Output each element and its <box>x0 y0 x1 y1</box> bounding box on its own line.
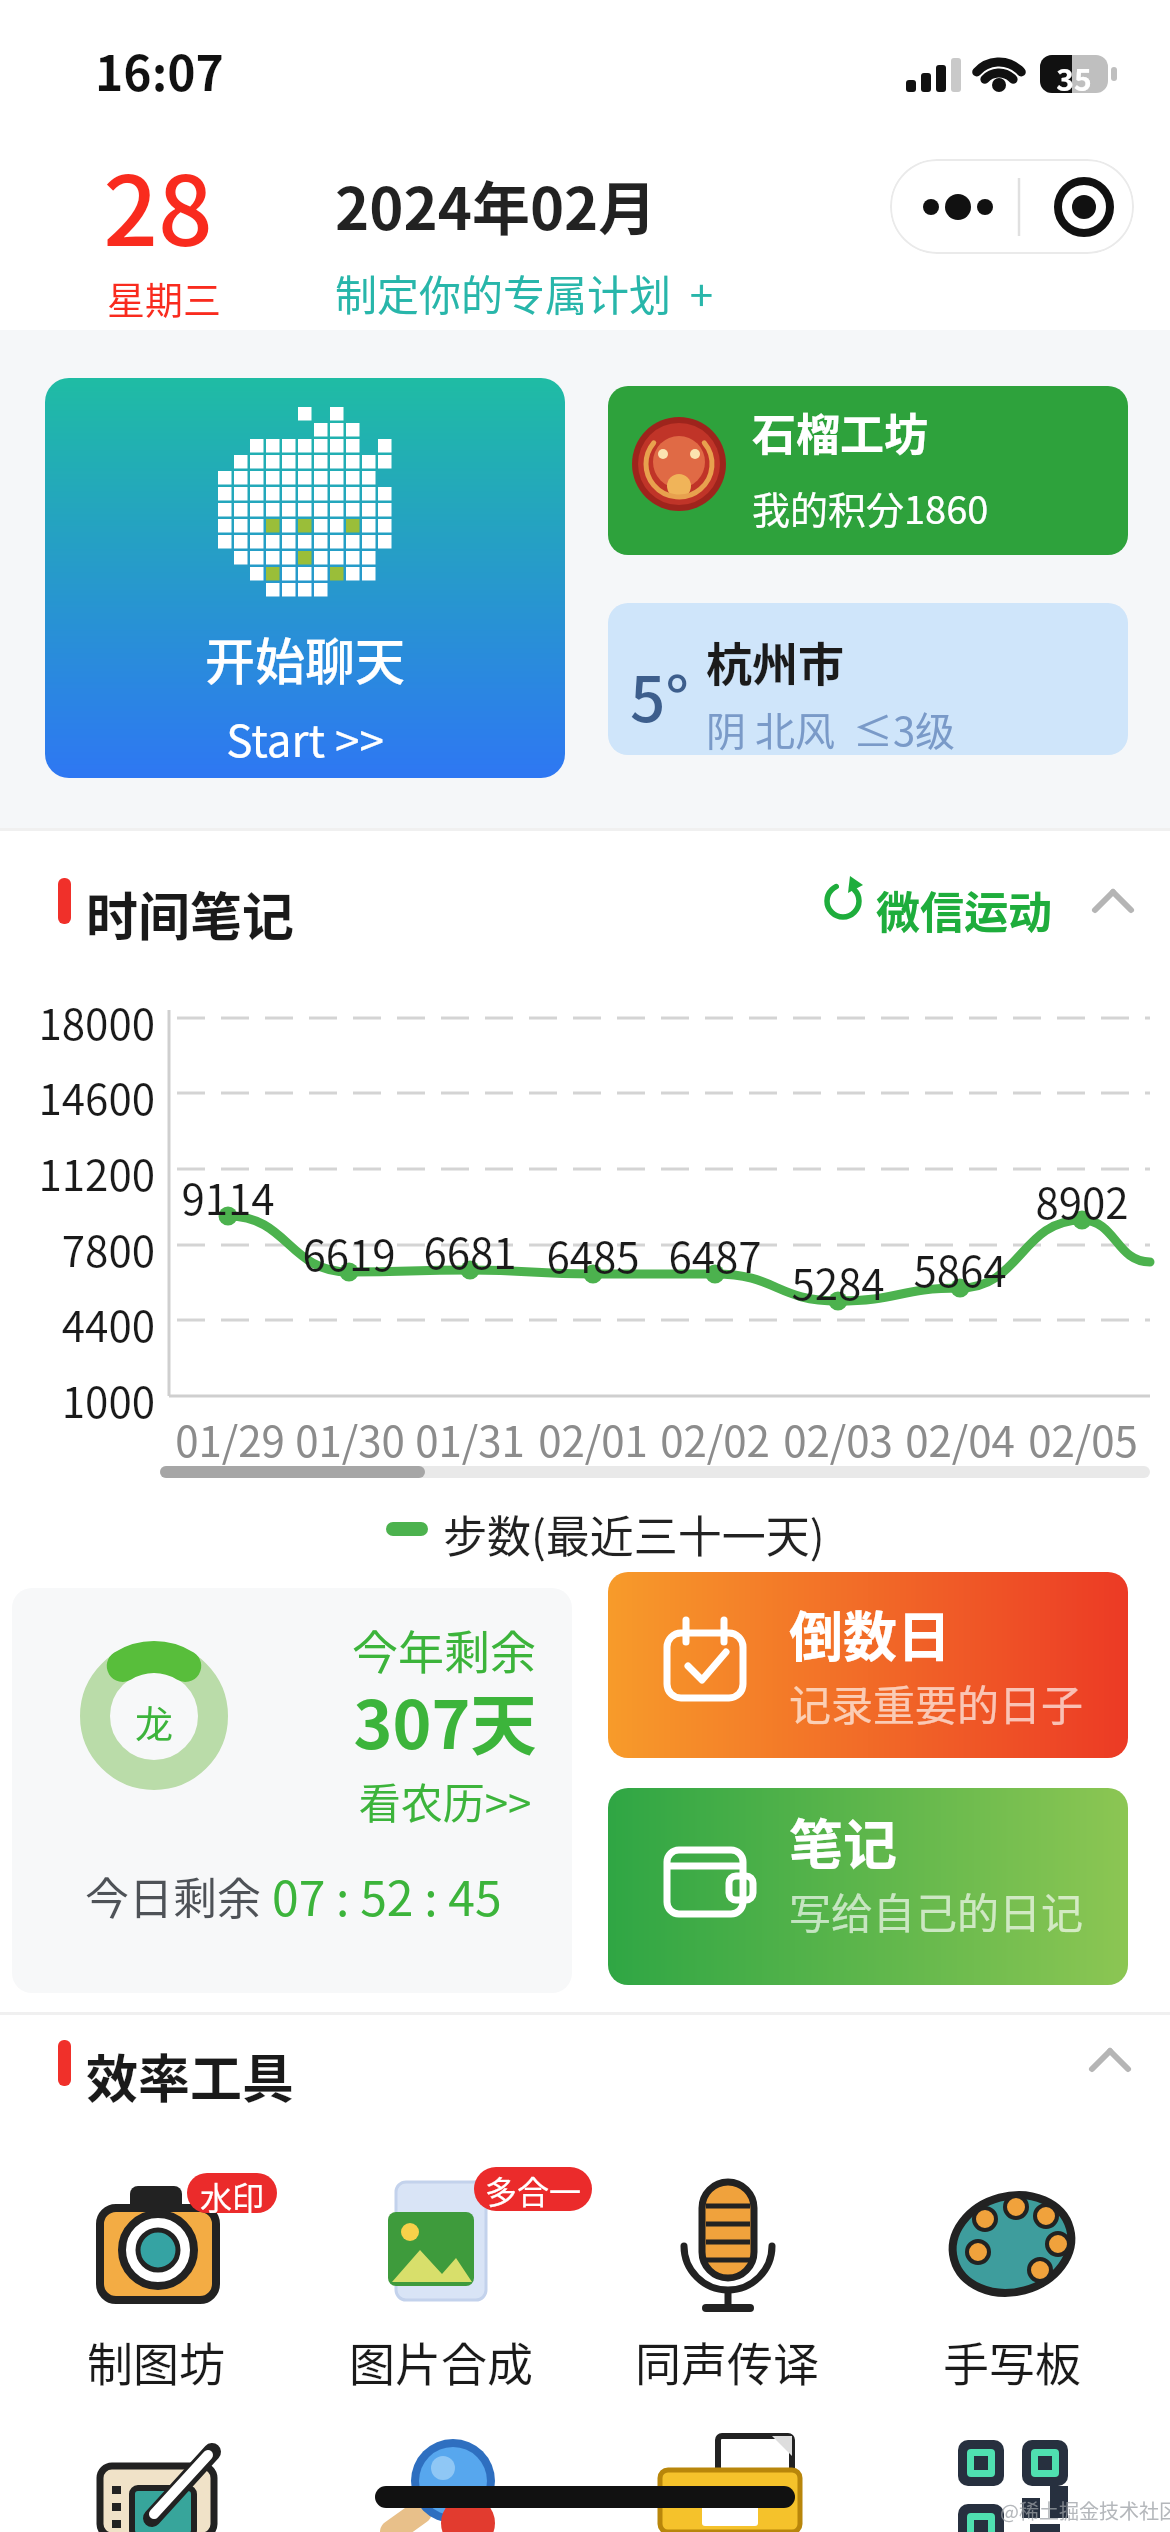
staticText: 18000 <box>5 991 155 1052</box>
staticText: 制定你的专属计划 + <box>335 262 714 323</box>
staticText: 01/30 <box>280 1408 420 1469</box>
staticText: 28 <box>78 135 238 274</box>
staticText: 我的积分1860 <box>752 480 989 535</box>
staticText: 杭州市 <box>706 628 844 695</box>
staticText: 效率工具 <box>86 2038 295 2113</box>
staticText: 1000 <box>5 1369 155 1430</box>
staticText: 星期三 <box>84 270 244 325</box>
staticText: 阴 北风 ≤3级 <box>706 700 956 758</box>
staticText: 01/31 <box>400 1408 540 1469</box>
staticText: 倒数日 <box>789 1594 951 1672</box>
staticText: 02/05 <box>1013 1408 1153 1469</box>
staticText: 02/02 <box>645 1408 785 1469</box>
button[interactable] <box>608 1788 1128 1985</box>
button[interactable] <box>896 2160 1166 2390</box>
staticText: 今日剩余 <box>85 1864 261 1928</box>
staticText: 14600 <box>5 1066 155 1127</box>
button[interactable]: 看农历>> <box>355 1770 535 1831</box>
staticText: 16:07 <box>95 35 224 105</box>
button[interactable] <box>890 159 1134 254</box>
staticText: 5284 <box>768 1251 908 1312</box>
staticText: 6485 <box>523 1224 663 1285</box>
staticText: 手写板 <box>886 2328 1138 2395</box>
staticText: 6487 <box>645 1224 785 1285</box>
staticText: 多合一 <box>485 2167 582 2211</box>
staticText: 看农历>> <box>355 1770 535 1831</box>
staticText: 02/01 <box>523 1408 663 1469</box>
staticText: 步数(最近三十一天) <box>443 1502 825 1566</box>
staticText: 图片合成 <box>315 2328 567 2395</box>
button[interactable] <box>20 2160 290 2390</box>
staticText: 4400 <box>5 1293 155 1354</box>
staticText: 307天 <box>340 1672 550 1768</box>
button[interactable] <box>608 386 1128 555</box>
staticText: 02/03 <box>768 1408 908 1469</box>
staticText: @稀土掘金技术社区 <box>1000 2496 1170 2525</box>
staticText: 2024年02月 <box>335 163 657 247</box>
button[interactable] <box>312 2160 582 2390</box>
staticText: Start >> <box>45 706 565 770</box>
button[interactable] <box>12 1588 572 1993</box>
staticText: 9114 <box>158 1166 298 1227</box>
staticText: 龙 <box>124 1694 184 1749</box>
staticText: 8902 <box>1012 1170 1152 1231</box>
staticText: 02/04 <box>890 1408 1030 1469</box>
staticText: 01/29 <box>160 1408 300 1469</box>
staticText: 开始聊天 <box>45 622 565 694</box>
button[interactable] <box>608 1572 1128 1758</box>
staticText: 写给自己的日记 <box>789 1880 1084 1941</box>
staticText: 11200 <box>5 1142 155 1203</box>
staticText: 5° <box>630 650 690 740</box>
staticText: 制图坊 <box>30 2328 282 2395</box>
button[interactable] <box>604 2160 874 2390</box>
staticText: 5864 <box>890 1238 1030 1299</box>
staticText: 35 <box>1040 56 1108 99</box>
button[interactable] <box>608 603 1128 755</box>
staticText: 6681 <box>400 1220 540 1281</box>
staticText: 同声传译 <box>601 2328 853 2395</box>
staticText: 水印 <box>200 2173 265 2213</box>
staticText: 记录重要的日子 <box>789 1672 1084 1733</box>
button[interactable] <box>45 378 565 778</box>
button[interactable] <box>820 870 1150 940</box>
staticText: 微信运动 <box>876 878 1052 942</box>
staticText: 07 : 52 : 45 <box>272 1860 502 1930</box>
staticText: 石榴工坊 <box>752 400 928 464</box>
staticText: 笔记 <box>789 1802 897 1880</box>
staticText: 时间笔记 <box>86 876 295 951</box>
staticText: 7800 <box>5 1218 155 1279</box>
staticText: 6619 <box>279 1222 419 1283</box>
staticText: 今年剩余 <box>324 1616 564 1683</box>
